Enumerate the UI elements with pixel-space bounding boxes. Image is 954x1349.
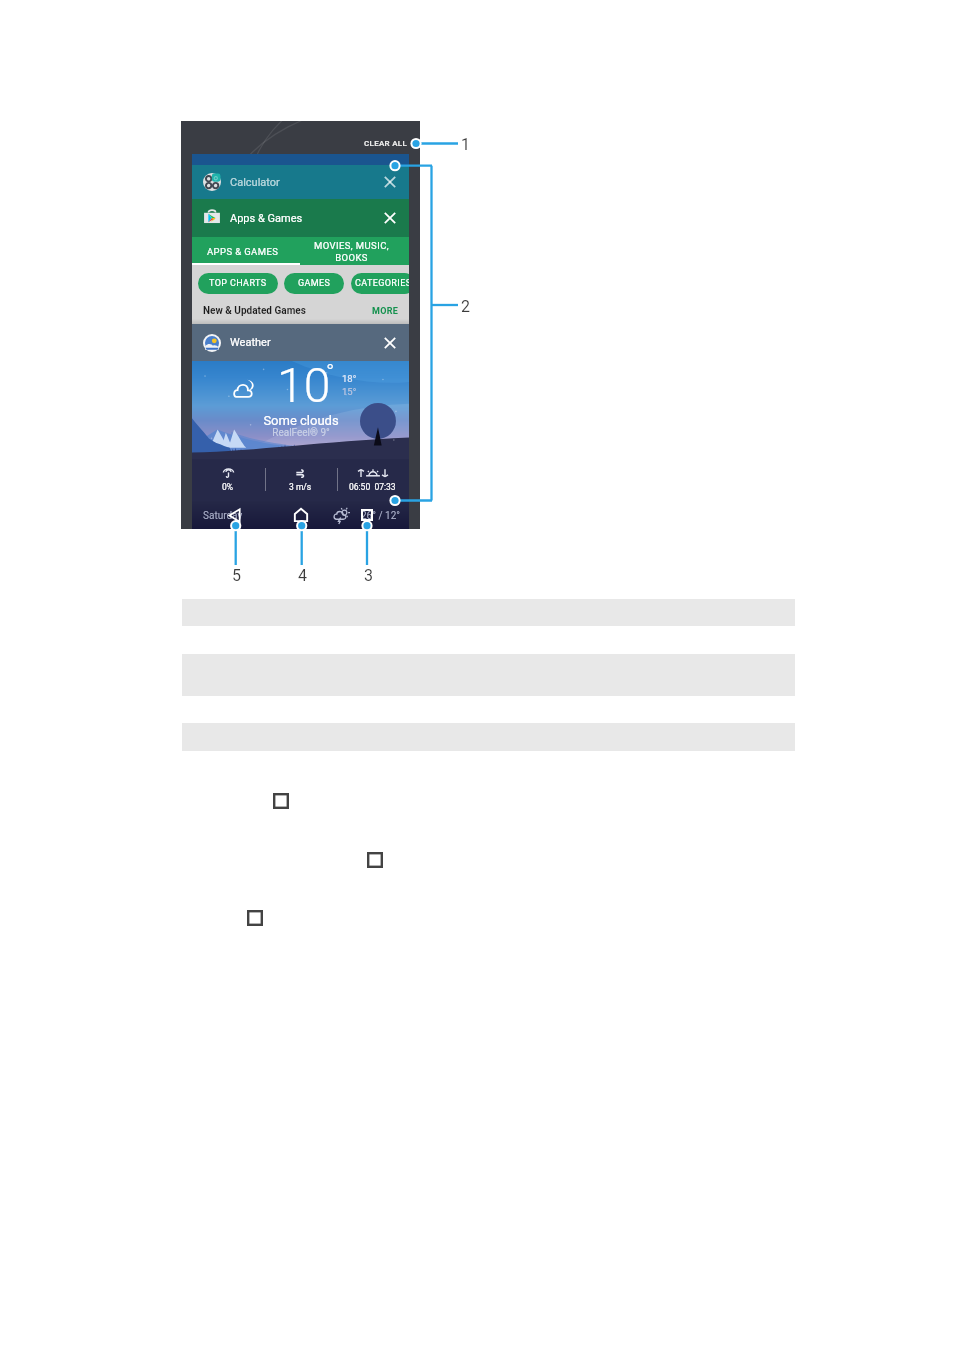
staticText: RealFeel® 9° (241, 427, 361, 439)
button[interactable]: CATEGORIES (351, 273, 409, 294)
staticText: 0% (222, 482, 234, 492)
button[interactable]: Close Apps & Games (380, 208, 400, 228)
staticText: Weather (230, 336, 271, 349)
staticText: 2 (461, 297, 470, 316)
staticText: Saturday (203, 510, 243, 522)
button[interactable]: MOVIES, MUSIC, BOOKS (294, 237, 409, 265)
staticText: TOP CHARTS (209, 278, 267, 289)
staticText: Some clouds (241, 413, 361, 428)
staticText: 10 (277, 357, 331, 413)
staticText: 3 (364, 566, 373, 585)
staticText: 15° (342, 386, 357, 397)
staticText: MOVIES, MUSIC, BOOKS (314, 240, 389, 263)
button[interactable]: Recent apps (351, 502, 383, 528)
staticText: 5 (232, 566, 241, 585)
button[interactable]: APPS & GAMES (192, 237, 294, 265)
button[interactable]: Weather (192, 324, 409, 361)
staticText: 4 (298, 566, 307, 585)
button[interactable]: Calculator (192, 165, 409, 199)
staticText: CLEAR ALL (364, 139, 408, 148)
button[interactable]: TOP CHARTS (198, 273, 278, 294)
staticText: APPS & GAMES (207, 246, 279, 257)
staticText: 18° (342, 373, 357, 384)
staticText: New & Updated Games (203, 305, 306, 317)
button[interactable]: Close Weather (380, 333, 400, 353)
staticText: GAMES (298, 278, 331, 289)
button[interactable]: Close Calculator (380, 172, 400, 192)
staticText: Apps & Games (230, 212, 303, 225)
staticText: MORE (372, 306, 399, 317)
staticText: 3 m/s (289, 482, 312, 492)
button[interactable]: Apps & Games (192, 199, 409, 237)
staticText: ° (326, 360, 335, 386)
staticText: CATEGORIES (355, 278, 409, 289)
button[interactable]: CLEAR ALL (360, 133, 412, 153)
button[interactable]: Back (218, 502, 250, 528)
staticText: 06:50 07:33 (349, 482, 396, 492)
button[interactable]: Home (285, 502, 317, 528)
staticText: Calculator (230, 176, 280, 189)
staticText: 1 (461, 135, 470, 154)
staticText: 26° / 12° (361, 510, 401, 522)
button[interactable]: GAMES (284, 273, 344, 294)
